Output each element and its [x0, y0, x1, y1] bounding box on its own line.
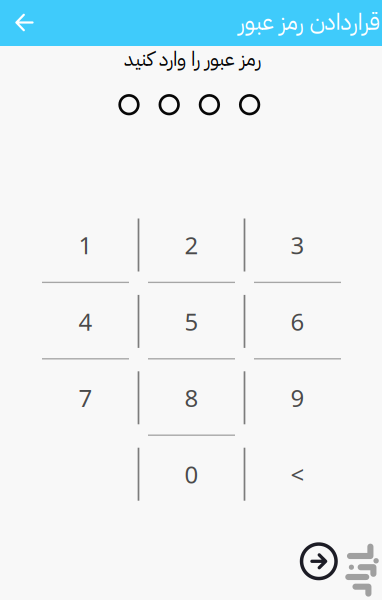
button[interactable]: 8	[138, 360, 244, 436]
button[interactable]: 7	[32, 360, 138, 436]
staticText: 1	[78, 229, 92, 261]
staticText: 0	[184, 458, 198, 490]
button[interactable]: Continue	[297, 539, 341, 583]
staticText: رمز عبور را وارد کنید	[123, 44, 260, 74]
button[interactable]: 5	[138, 283, 244, 360]
button[interactable]: 2	[138, 207, 244, 283]
staticText: 9	[290, 382, 304, 414]
button[interactable]: 4	[32, 283, 138, 360]
button[interactable]: 9	[244, 360, 350, 436]
button[interactable]: 3	[244, 207, 350, 283]
staticText: 8	[184, 382, 198, 414]
button[interactable]: 6	[244, 283, 350, 360]
button[interactable]: Back	[2, 0, 46, 44]
button[interactable]: <	[244, 436, 350, 512]
button[interactable]: 0	[138, 436, 244, 512]
staticText: قراردادن رمز عبور	[238, 4, 380, 39]
staticText: 4	[78, 305, 92, 337]
staticText: <	[290, 458, 304, 490]
staticText: 7	[78, 382, 92, 414]
staticText: 5	[184, 305, 198, 337]
staticText: 6	[290, 305, 304, 337]
staticText: 2	[184, 229, 198, 261]
staticText: 3	[290, 229, 304, 261]
button[interactable]: 1	[32, 207, 138, 283]
